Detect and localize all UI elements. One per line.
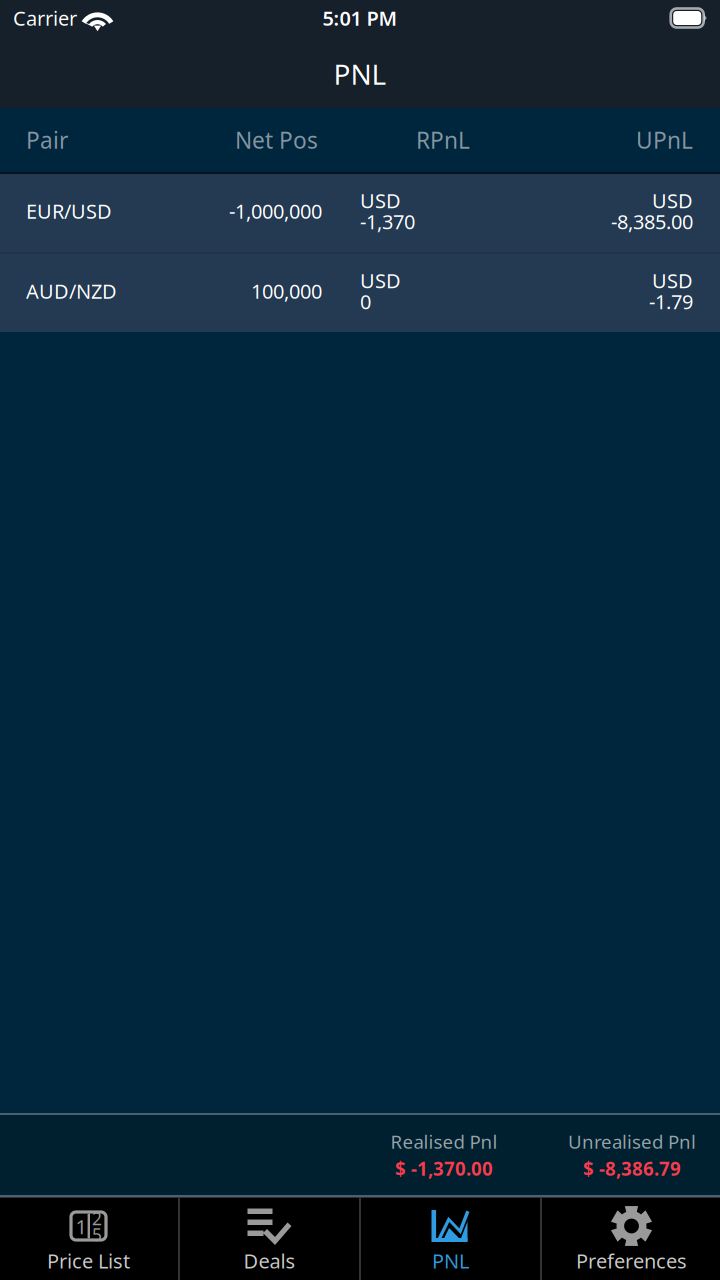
staticText: Deals bbox=[243, 1247, 295, 1274]
staticText: USD bbox=[360, 187, 401, 214]
button[interactable]: EUR/USD bbox=[0, 174, 720, 252]
staticText: 5 bbox=[92, 1223, 102, 1246]
button[interactable]: Deals bbox=[180, 1198, 359, 1280]
staticText: Realised Pnl bbox=[390, 1129, 497, 1154]
staticText: 100,000 bbox=[251, 278, 322, 304]
staticText: Carrier bbox=[13, 5, 77, 31]
button[interactable]: AUD/NZD bbox=[0, 254, 720, 332]
staticText: -1.79 bbox=[649, 288, 693, 315]
staticText: -8,385.00 bbox=[611, 208, 693, 235]
staticText: Pair bbox=[26, 125, 68, 155]
staticText: UPnL bbox=[636, 125, 693, 155]
button[interactable]: PNL bbox=[361, 1198, 540, 1280]
staticText: Price List bbox=[47, 1247, 130, 1274]
staticText: USD bbox=[652, 267, 693, 294]
staticText: USD bbox=[360, 267, 401, 294]
staticText: AUD/NZD bbox=[26, 278, 117, 304]
staticText: 2 bbox=[92, 1207, 102, 1230]
staticText: USD bbox=[652, 187, 693, 214]
staticText: PNL bbox=[432, 1247, 469, 1274]
staticText: EUR/USD bbox=[26, 198, 112, 224]
staticText: RPnL bbox=[416, 125, 470, 155]
staticText: -1,000,000 bbox=[229, 198, 322, 224]
button[interactable]: 1 bbox=[0, 1198, 178, 1280]
staticText: Net Pos bbox=[235, 125, 318, 155]
staticText: Unrealised Pnl bbox=[568, 1129, 696, 1154]
button[interactable]: Preferences bbox=[542, 1198, 720, 1280]
staticText: PNL bbox=[333, 55, 386, 93]
staticText: 5:01 PM bbox=[322, 5, 397, 31]
staticText: $ -8,386.79 bbox=[583, 1156, 681, 1181]
staticText: Preferences bbox=[576, 1247, 687, 1274]
staticText: 1 bbox=[75, 1213, 86, 1240]
staticText: $ -1,370.00 bbox=[395, 1156, 493, 1181]
staticText: 0 bbox=[360, 288, 371, 315]
staticText: -1,370 bbox=[360, 208, 415, 235]
